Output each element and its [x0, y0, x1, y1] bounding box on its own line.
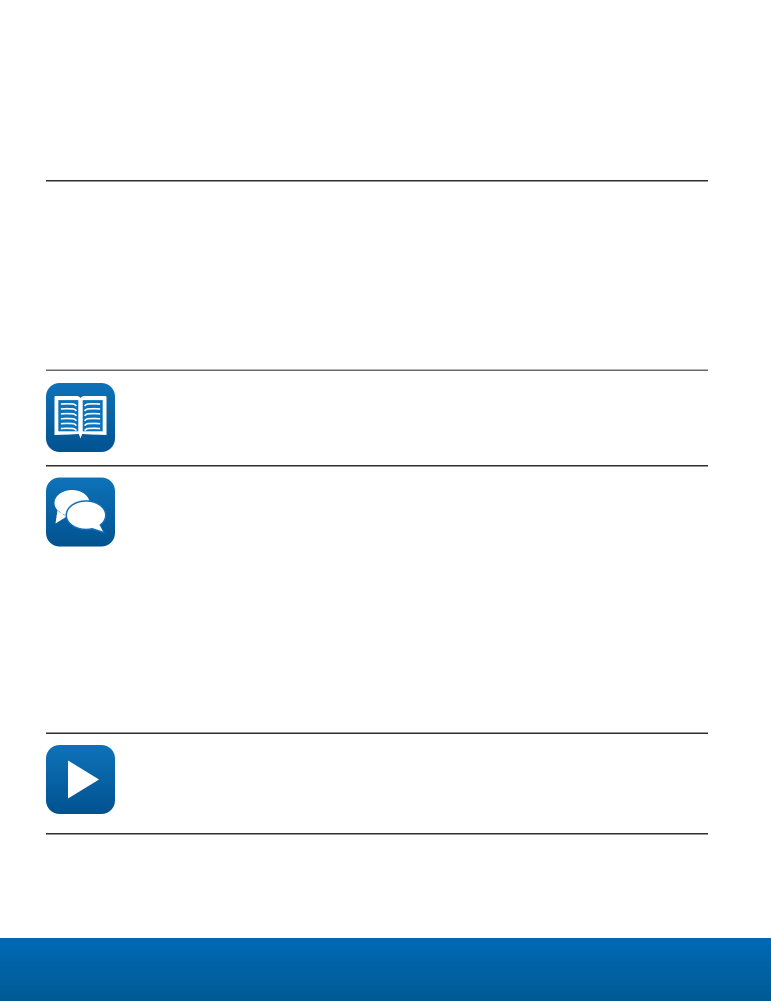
button[interactable]: Toolbar — [0, 938, 771, 1001]
button[interactable]: Watch — [0, 745, 771, 814]
button[interactable]: Read — [0, 383, 771, 452]
button[interactable]: Discuss — [0, 477, 771, 546]
